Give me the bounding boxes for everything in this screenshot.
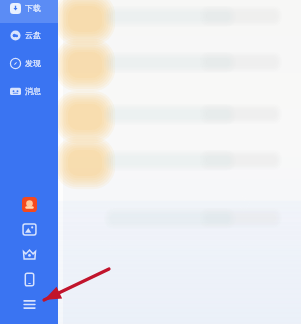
button[interactable]: 云盘 — [0, 20, 58, 48]
button[interactable]: Phone — [0, 267, 58, 292]
staticText: 下载 — [25, 3, 41, 13]
button[interactable]: VIP — [0, 242, 58, 267]
button[interactable]: Menu — [0, 292, 58, 317]
button[interactable]: 发现 — [0, 48, 58, 76]
button[interactable]: App — [0, 192, 58, 217]
button[interactable]: Images — [0, 217, 58, 242]
button[interactable]: 下载 — [0, 0, 58, 20]
staticText: 云盘 — [25, 30, 41, 40]
button[interactable]: 消息 — [0, 76, 58, 104]
staticText: 发现 — [25, 58, 41, 68]
staticText: 消息 — [25, 86, 41, 96]
